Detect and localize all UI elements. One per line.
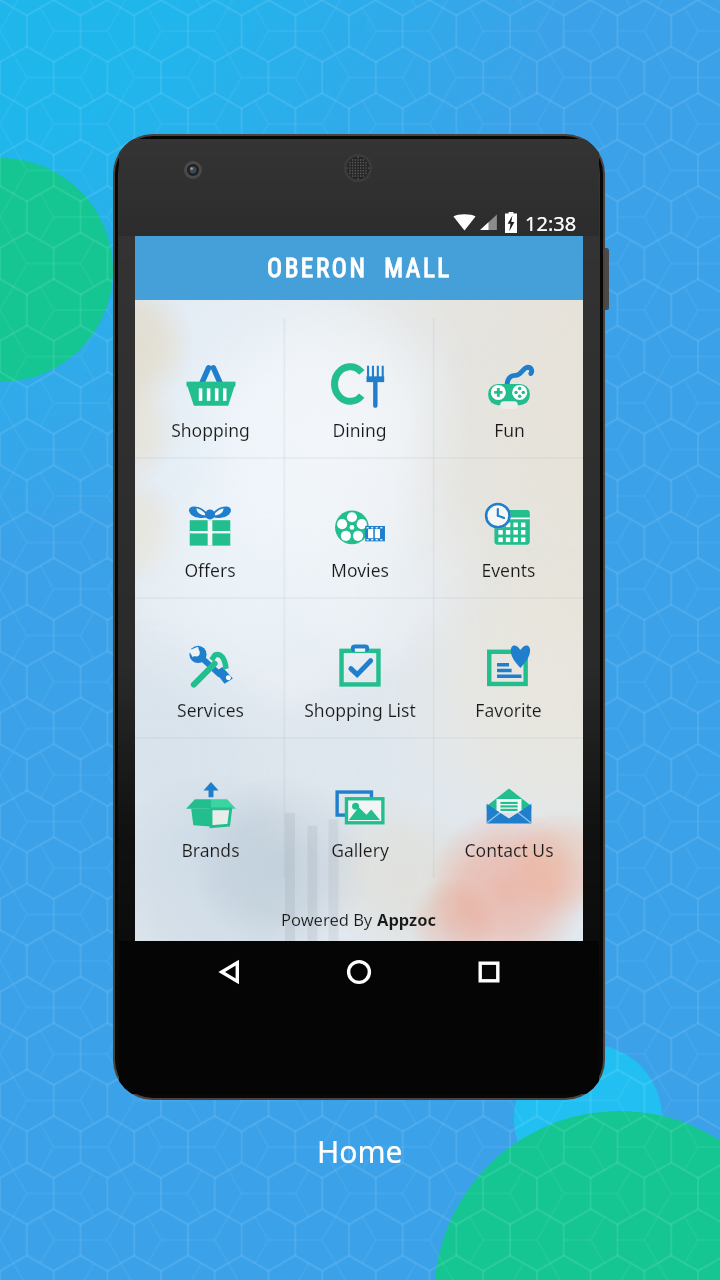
staticText: Shopping List <box>304 698 416 722</box>
button[interactable]: Events <box>434 458 583 598</box>
staticText: OBERON MALL <box>267 254 452 283</box>
staticText: Powered By <box>281 908 377 930</box>
staticText: Fun <box>494 418 525 442</box>
staticText: Movies <box>331 558 389 582</box>
button[interactable]: Services <box>135 598 285 738</box>
button[interactable]: Offers <box>135 458 285 598</box>
button[interactable]: Movies <box>285 458 434 598</box>
staticText: Contact Us <box>464 838 554 862</box>
button[interactable]: Recent apps <box>454 941 524 1003</box>
staticText: Brands <box>181 838 240 862</box>
button[interactable]: Brands <box>135 738 285 878</box>
button[interactable]: Dining <box>285 318 434 458</box>
button[interactable]: Shopping List <box>285 598 434 738</box>
staticText: Events <box>481 558 536 582</box>
button[interactable]: Home <box>324 941 394 1003</box>
staticText: Gallery <box>331 838 389 862</box>
staticText: Services <box>177 698 244 722</box>
button[interactable]: Fun <box>434 318 583 458</box>
staticText: Appzoc <box>377 908 437 930</box>
button[interactable]: Back <box>195 941 265 1003</box>
button[interactable]: Shopping <box>135 318 285 458</box>
staticText: 12:38 <box>525 210 577 234</box>
staticText: Shopping <box>171 418 250 442</box>
staticText: Offers <box>184 558 236 582</box>
staticText: Favorite <box>475 698 542 722</box>
button[interactable]: Gallery <box>285 738 434 878</box>
staticText: Home <box>317 1131 403 1172</box>
staticText: Dining <box>332 418 387 442</box>
button[interactable]: Favorite <box>434 598 583 738</box>
button[interactable]: Contact Us <box>434 738 583 878</box>
